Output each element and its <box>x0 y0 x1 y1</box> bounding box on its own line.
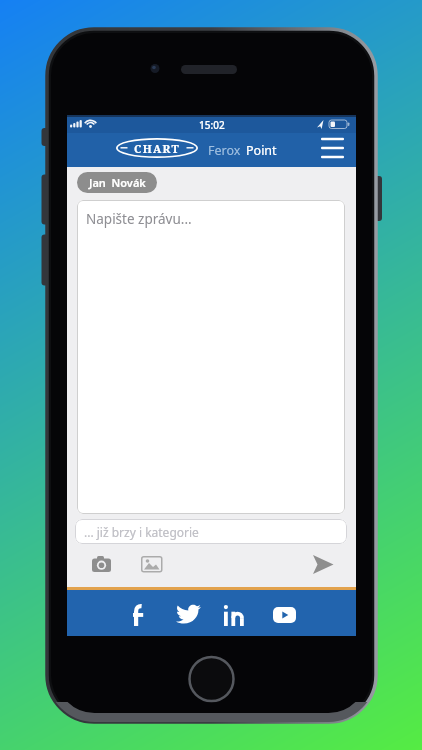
button[interactable]: Jan Novák <box>77 172 157 193</box>
button[interactable] <box>313 555 334 574</box>
button[interactable]: Napište zprávu... <box>77 200 345 514</box>
button[interactable] <box>133 605 144 626</box>
button[interactable] <box>176 604 201 624</box>
staticText: ... již brzy i kategorie <box>84 524 199 540</box>
button[interactable] <box>224 605 244 626</box>
staticText: CHART <box>134 141 180 156</box>
button[interactable] <box>321 137 344 159</box>
button[interactable] <box>141 556 163 573</box>
button[interactable]: CHART <box>116 138 198 158</box>
staticText: Jan Novák <box>89 175 146 190</box>
staticText: Point <box>246 142 277 159</box>
button[interactable] <box>92 556 111 572</box>
button[interactable] <box>273 607 296 623</box>
staticText: 15:02 <box>199 118 225 132</box>
staticText: Ferox <box>208 142 241 159</box>
staticText: Napište zprávu... <box>86 210 192 228</box>
button[interactable]: ... již brzy i kategorie <box>75 519 347 544</box>
